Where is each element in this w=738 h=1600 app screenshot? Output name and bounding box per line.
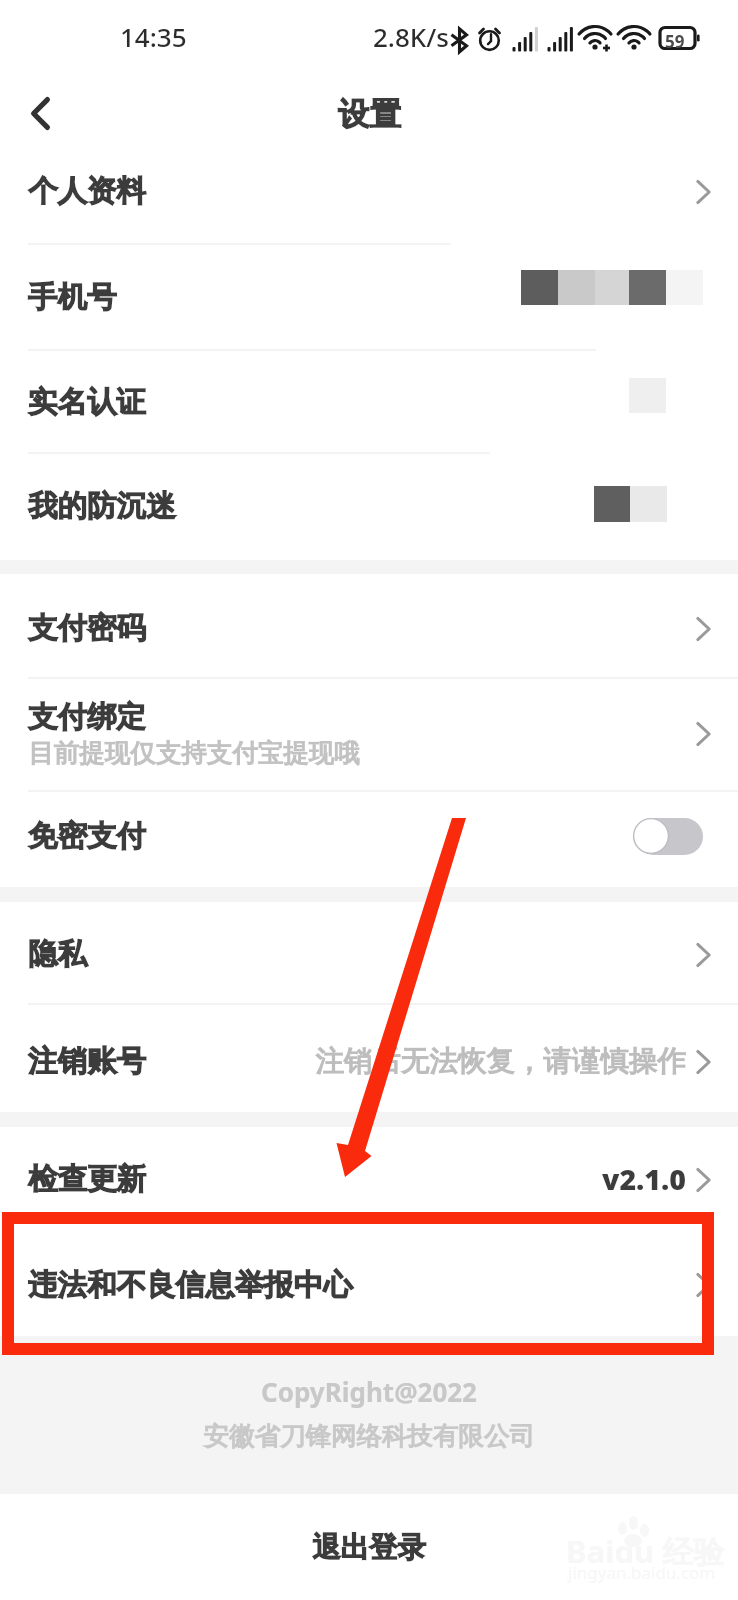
staticText: 检查更新: [28, 1161, 146, 1198]
staticText: 2.8K/s: [373, 19, 449, 54]
button[interactable]: 注销账号: [0, 1007, 738, 1116]
button[interactable]: 退出登录: [0, 1494, 738, 1600]
staticText: 注销后无法恢复，请谨慎操作: [315, 1044, 686, 1080]
staticText: CopyRight@2022: [261, 1374, 477, 1409]
staticText: 14:35: [120, 19, 187, 54]
staticText: 免密支付: [28, 818, 146, 855]
button[interactable]: Toggle: [633, 818, 703, 855]
staticText: 个人资料: [28, 173, 146, 210]
staticText: Baidu 经验: [566, 1530, 725, 1572]
staticText: 支付密码: [28, 610, 146, 647]
staticText: 我的防沉迷: [28, 488, 176, 525]
button[interactable]: 我的防沉迷: [0, 452, 738, 560]
button[interactable]: 隐私: [0, 904, 738, 1005]
button[interactable]: 免密支付: [0, 788, 738, 885]
button[interactable]: 手机号: [0, 245, 738, 349]
button[interactable]: 实名认证: [0, 351, 738, 454]
button[interactable]: 违法和不良信息举报中心: [0, 1231, 738, 1339]
button[interactable]: 支付绑定: [0, 677, 738, 790]
button[interactable]: 支付密码: [0, 577, 738, 680]
staticText: 支付绑定: [28, 699, 146, 736]
staticText: 注销账号: [28, 1043, 146, 1080]
button[interactable]: 检查更新: [0, 1129, 738, 1230]
staticText: 安徽省刀锋网络科技有限公司: [203, 1420, 535, 1452]
staticText: 实名认证: [28, 384, 146, 421]
staticText: jingyan.baidu.com: [568, 1561, 716, 1584]
staticText: 违法和不良信息举报中心: [28, 1267, 353, 1304]
staticText: 59: [665, 30, 685, 53]
button[interactable]: Back: [0, 73, 80, 153]
staticText: 设置: [338, 95, 401, 135]
staticText: v2.1.0: [602, 1160, 686, 1199]
staticText: 隐私: [28, 936, 87, 973]
staticText: 退出登录: [312, 1530, 426, 1566]
button[interactable]: 个人资料: [0, 138, 738, 245]
staticText: 目前提现仅支持支付宝提现哦: [28, 737, 360, 769]
staticText: 手机号: [28, 279, 117, 316]
